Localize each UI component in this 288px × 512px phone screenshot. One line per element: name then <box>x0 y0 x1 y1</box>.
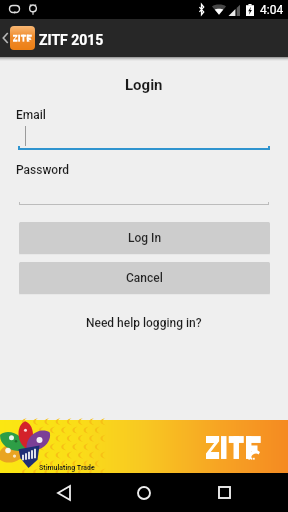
button[interactable]: Log In <box>19 222 270 254</box>
staticText: 4:04 <box>260 3 284 17</box>
button[interactable]: Navigate up <box>0 26 11 50</box>
staticText: Log In <box>128 231 162 245</box>
staticText: Cancel <box>126 271 163 285</box>
staticText: ZITF 2015 <box>39 32 104 48</box>
button[interactable]: ZITF advertisement <box>0 420 288 473</box>
button[interactable]: Need help logging in? <box>80 314 208 332</box>
button[interactable]: Home <box>124 473 164 512</box>
staticText: Password <box>16 163 70 177</box>
staticText: Login <box>125 76 163 94</box>
button[interactable]: Cancel <box>19 262 270 294</box>
staticText: Email <box>16 108 46 122</box>
button[interactable]: Recent apps <box>204 473 244 512</box>
button[interactable]: Back <box>44 473 84 512</box>
staticText: Stimulating Trade <box>39 464 95 472</box>
staticText: Need help logging in? <box>86 316 202 330</box>
